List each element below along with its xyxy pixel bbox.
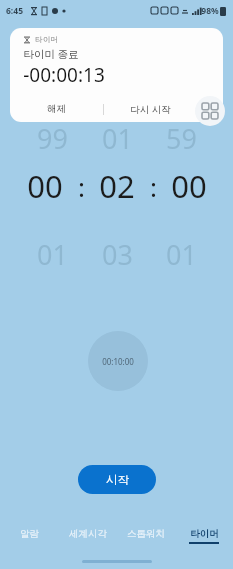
staticText: 00 (171, 165, 207, 207)
button[interactable]: 앱 전환 (195, 96, 225, 126)
staticText: 타이미 종료 (23, 47, 79, 61)
button[interactable]: 세계시각 (59, 528, 117, 540)
button[interactable]: 00:10:00 (88, 331, 148, 391)
staticText: 98% (201, 5, 219, 17)
staticText: 01 (37, 236, 68, 273)
button[interactable]: 00 (160, 165, 218, 207)
staticText: 6:45 (6, 5, 23, 17)
staticText: 00 (27, 165, 63, 207)
staticText: : (150, 169, 157, 204)
staticText: 59 (166, 120, 197, 157)
button[interactable]: 02 (88, 165, 146, 207)
button[interactable]: 00 (16, 165, 74, 207)
staticText: 알람 (20, 528, 39, 540)
staticText: 타이머 (35, 35, 58, 44)
staticText: 해제 (47, 103, 66, 115)
button[interactable]: 시작 (78, 465, 156, 494)
staticText: 시작 (106, 473, 129, 487)
button[interactable]: 59 (155, 120, 207, 157)
staticText: 세계시각 (69, 528, 107, 540)
button[interactable]: 01 (26, 236, 78, 273)
staticText: 스톱워치 (127, 528, 165, 540)
button[interactable]: 01 (91, 120, 143, 157)
button[interactable]: 타이머 (175, 528, 233, 544)
staticText: 00:10:00 (102, 356, 134, 367)
button[interactable]: 01 (155, 236, 207, 273)
staticText: 03 (102, 236, 133, 273)
staticText: 01 (102, 120, 133, 157)
button[interactable]: 해제 (10, 96, 103, 122)
button[interactable]: 타이머 (10, 28, 223, 122)
staticText: 다시 시작 (130, 103, 171, 116)
button[interactable]: 알람 (0, 528, 59, 540)
staticText: 01 (166, 236, 197, 273)
staticText: 타이머 (190, 528, 219, 540)
staticText: : (78, 169, 85, 204)
button[interactable]: 03 (91, 236, 143, 273)
button[interactable]: 다시 시작 (104, 96, 197, 122)
button[interactable]: 99 (26, 120, 78, 157)
staticText: -00:00:13 (23, 62, 105, 88)
staticText: 99 (37, 120, 68, 157)
staticText: 02 (99, 165, 135, 207)
button[interactable]: 스톱워치 (117, 528, 175, 540)
